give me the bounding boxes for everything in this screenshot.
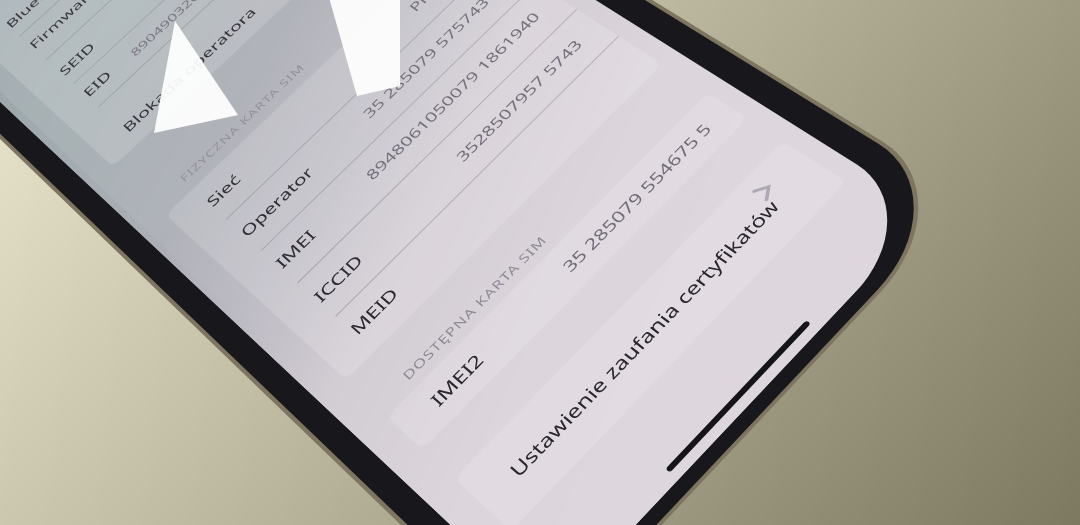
button[interactable] xyxy=(0,0,1080,525)
